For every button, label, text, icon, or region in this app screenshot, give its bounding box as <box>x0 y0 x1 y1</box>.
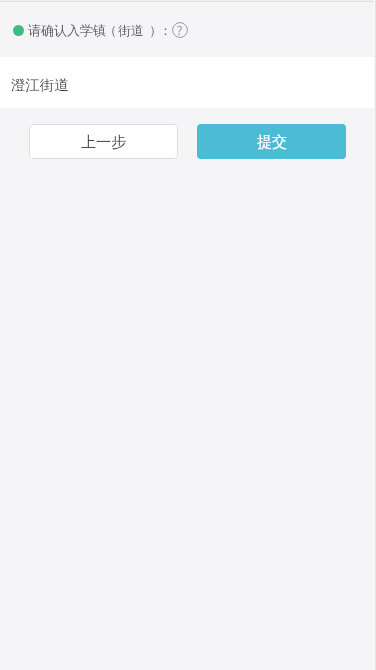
button[interactable]: 上一步 <box>29 124 178 159</box>
staticText: （ <box>104 22 117 38</box>
staticText: 澄江街道 <box>11 76 69 94</box>
staticText: ? <box>177 22 183 38</box>
staticText: 请确认入学镇 <box>28 22 106 38</box>
staticText: ： <box>159 22 172 38</box>
button[interactable]: 澄江街道 <box>0 57 376 108</box>
staticText: 上一步 <box>81 133 126 152</box>
button[interactable]: 提交 <box>197 124 346 159</box>
staticText: 街道 <box>118 22 144 38</box>
staticText: ） <box>149 22 162 38</box>
staticText: 提交 <box>257 133 287 152</box>
button[interactable]: Help <box>172 22 188 38</box>
